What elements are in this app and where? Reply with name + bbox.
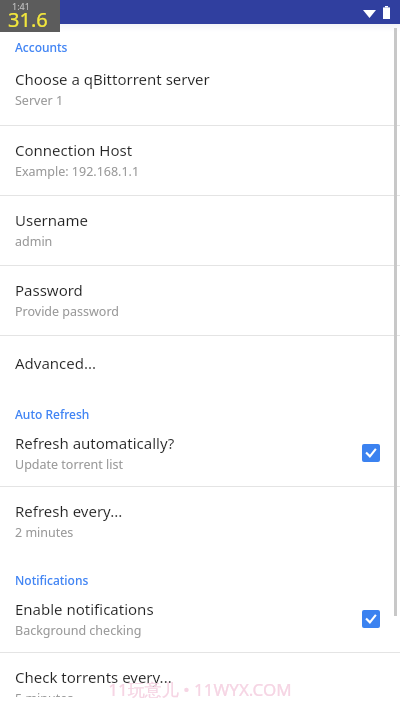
staticText: Background checking (15, 622, 142, 639)
button[interactable]: Temperature overlay (0, 0, 60, 32)
staticText: Advanced... (15, 353, 97, 373)
button[interactable]: Connection Host (0, 126, 400, 195)
staticText: Auto Refresh (15, 406, 90, 422)
button[interactable]: Password (0, 266, 400, 335)
button[interactable]: Username (0, 196, 400, 265)
button[interactable]: Enable notifications (0, 590, 400, 652)
staticText: Refresh every... (15, 501, 123, 521)
staticText: 5 minutes (15, 690, 74, 697)
staticText: Password (15, 280, 83, 300)
button[interactable]: Choose a qBittorrent server (0, 57, 400, 125)
button[interactable]: Refresh automatically? (0, 424, 400, 486)
staticText: Refresh automatically? (15, 433, 175, 453)
staticText: Server 1 (15, 92, 64, 109)
staticText: Example: 192.168.1.1 (15, 163, 140, 180)
staticText: Check torrents every... (15, 667, 172, 687)
staticText: Provide password (15, 303, 120, 320)
staticText: Accounts (15, 39, 68, 55)
staticText: 11玩意儿 • 11WYX.COM (108, 678, 292, 701)
staticText: 1:41 (12, 0, 30, 12)
button[interactable]: Refresh automatically? (354, 436, 388, 470)
staticText: Connection Host (15, 140, 133, 160)
staticText: Enable notifications (15, 599, 154, 619)
staticText: Notifications (15, 572, 89, 588)
button[interactable]: Check torrents every... (0, 653, 400, 712)
staticText: Choose a qBittorrent server (15, 69, 210, 89)
staticText: Username (15, 210, 88, 230)
staticText: 31.6 (8, 6, 48, 33)
button[interactable]: Enable notifications (354, 602, 388, 636)
staticText: Update torrent list (15, 456, 123, 473)
button[interactable]: Advanced... (0, 336, 400, 392)
staticText: admin (15, 233, 53, 250)
button[interactable]: Refresh every... (0, 487, 400, 556)
staticText: 2 minutes (15, 524, 74, 541)
